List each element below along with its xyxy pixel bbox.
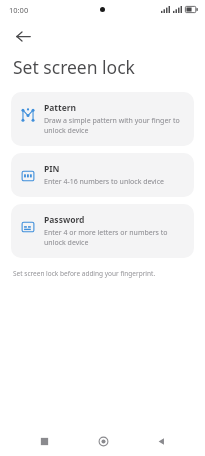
staticText: Set screen lock [13, 55, 135, 79]
button[interactable]: Pattern [11, 92, 194, 146]
staticText: 10:00 [9, 5, 29, 15]
button[interactable]: Back [9, 22, 37, 50]
staticText: Draw a simple pattern with your finger t… [44, 116, 185, 136]
button[interactable]: PIN [11, 153, 194, 197]
button[interactable]: Back [146, 426, 176, 456]
button[interactable]: Home [88, 426, 118, 456]
staticText: Enter 4-16 numbers to unlock device [44, 177, 164, 187]
button[interactable]: Recent apps [29, 426, 59, 456]
staticText: PIN [44, 163, 60, 175]
staticText: Set screen lock before adding your finge… [13, 269, 156, 278]
staticText: Enter 4 or more letters or numbers to un… [44, 228, 185, 248]
button[interactable]: Password [11, 204, 194, 258]
staticText: Pattern [44, 102, 77, 114]
staticText: Password [44, 214, 85, 226]
